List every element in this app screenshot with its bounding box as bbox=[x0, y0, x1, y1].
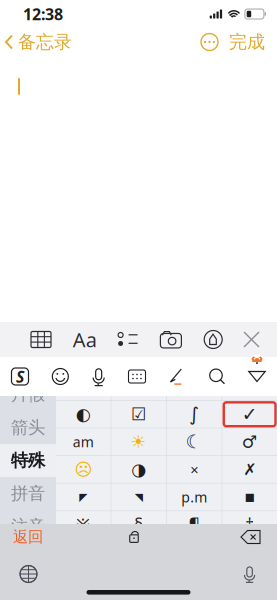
staticText: 备忘录 bbox=[18, 31, 72, 53]
button[interactable]: Checklist bbox=[118, 330, 139, 348]
staticText: § bbox=[134, 513, 143, 536]
staticText: ☑ bbox=[131, 404, 147, 424]
staticText: Aa bbox=[73, 326, 97, 353]
button[interactable]: Hide keyboard bbox=[248, 370, 266, 382]
button[interactable]: Delete bbox=[224, 524, 277, 550]
staticText: p.m bbox=[181, 487, 207, 507]
button[interactable]: ☹ bbox=[56, 456, 111, 483]
staticText: ⌂ bbox=[244, 377, 255, 397]
button[interactable]: 箭头 bbox=[0, 411, 56, 444]
button[interactable]: ☀ bbox=[111, 428, 166, 455]
staticText: ♂ bbox=[242, 432, 258, 452]
button[interactable]: Emoji bbox=[51, 367, 69, 385]
button[interactable]: Close bbox=[244, 332, 259, 347]
button[interactable]: 完成 bbox=[218, 26, 265, 58]
staticText: ∫ bbox=[189, 403, 199, 425]
staticText: 完成 bbox=[229, 31, 265, 53]
button[interactable]: ◑ bbox=[111, 456, 166, 483]
staticText: ◤ bbox=[79, 491, 87, 503]
button[interactable]: Markup bbox=[203, 329, 223, 349]
staticText: 特殊 bbox=[11, 450, 45, 471]
button[interactable]: Search bbox=[209, 368, 226, 385]
button[interactable]: § bbox=[111, 511, 166, 538]
staticText: 片假 bbox=[11, 384, 45, 405]
staticText: ☀ bbox=[131, 432, 147, 452]
button[interactable]: Switch keyboard bbox=[0, 564, 38, 583]
button[interactable]: ■ bbox=[222, 484, 277, 510]
button[interactable]: ⌂ bbox=[222, 373, 277, 400]
button[interactable]: ⊙ bbox=[111, 373, 166, 400]
button[interactable]: ◥ bbox=[111, 484, 166, 510]
button[interactable]: ☑ bbox=[111, 401, 166, 428]
staticText: S bbox=[16, 366, 24, 387]
button[interactable]: ◤ bbox=[56, 484, 111, 510]
staticText: ✗ bbox=[243, 460, 256, 479]
button[interactable]: Table bbox=[30, 330, 52, 348]
staticText: ※ bbox=[76, 513, 91, 536]
staticText: ⊙ bbox=[131, 377, 146, 397]
staticText: ⊕ bbox=[76, 377, 91, 397]
staticText: ■ bbox=[245, 491, 255, 503]
staticText: 注音 bbox=[11, 516, 45, 537]
staticText: ✓ bbox=[242, 403, 258, 425]
staticText: ¶ bbox=[189, 513, 200, 536]
staticText: ☾ bbox=[186, 431, 203, 453]
button[interactable]: Lock bbox=[127, 529, 141, 545]
staticText: ◥ bbox=[135, 491, 143, 503]
staticText: 12:38 bbox=[23, 3, 63, 25]
staticText: 拼音 bbox=[11, 483, 45, 504]
button[interactable]: 特殊 bbox=[0, 444, 56, 477]
staticText: 返回 bbox=[13, 527, 43, 547]
button[interactable]: p.m bbox=[167, 484, 222, 510]
staticText: ◐ bbox=[76, 404, 91, 424]
staticText: ☹ bbox=[74, 459, 92, 480]
button[interactable]: Dictation bbox=[243, 565, 277, 583]
button[interactable]: ⌘ bbox=[167, 373, 222, 400]
button[interactable]: 拼音 bbox=[0, 477, 56, 510]
staticText: ⌘ bbox=[186, 377, 203, 397]
button[interactable]: Handwriting bbox=[168, 367, 186, 385]
button[interactable]: ⊕ bbox=[56, 373, 111, 400]
button[interactable]: 注音 bbox=[0, 510, 56, 543]
button[interactable]: ※ bbox=[56, 511, 111, 538]
button[interactable]: × bbox=[167, 456, 222, 483]
button[interactable]: am bbox=[56, 428, 111, 455]
button[interactable]: ∫ bbox=[167, 401, 222, 428]
button[interactable]: 返回 bbox=[0, 524, 56, 550]
button[interactable]: ¶ bbox=[167, 511, 222, 538]
button[interactable]: Sogou menu bbox=[11, 367, 29, 385]
button[interactable]: Keypad bbox=[128, 369, 146, 384]
button[interactable]: Voice input bbox=[92, 366, 106, 386]
staticText: × bbox=[190, 459, 198, 479]
button[interactable]: ☾ bbox=[167, 428, 222, 455]
staticText: ◑ bbox=[131, 459, 146, 480]
staticText: † bbox=[245, 513, 254, 536]
button[interactable]: ◐ bbox=[56, 401, 111, 428]
button[interactable]: ♂ bbox=[222, 428, 277, 455]
staticText: am bbox=[73, 432, 94, 451]
button[interactable]: More bbox=[201, 33, 218, 50]
button[interactable]: Camera bbox=[159, 330, 182, 348]
button[interactable]: ✓ bbox=[222, 401, 277, 428]
button[interactable]: † bbox=[222, 511, 277, 538]
button[interactable]: Aa bbox=[73, 326, 97, 353]
button[interactable]: 片假 bbox=[0, 378, 56, 411]
button[interactable]: ✗ bbox=[222, 456, 277, 483]
button[interactable]: 备忘录 bbox=[0, 26, 72, 58]
staticText: 箭头 bbox=[11, 417, 45, 438]
